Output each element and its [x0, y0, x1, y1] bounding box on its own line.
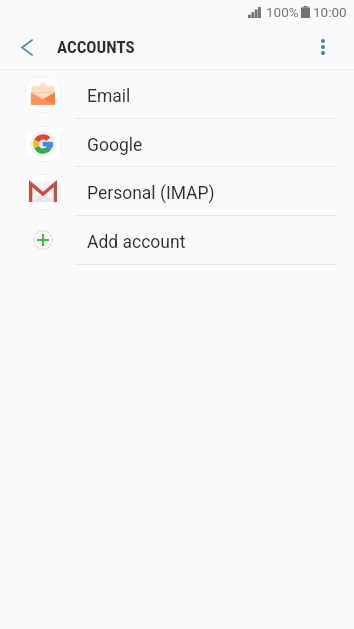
button[interactable]: More options	[300, 24, 346, 70]
button[interactable]: Personal (IMAP)	[0, 167, 354, 216]
button[interactable]: Add account	[0, 216, 354, 265]
button[interactable]: Email	[0, 70, 354, 119]
staticText: 100%	[266, 4, 299, 20]
button[interactable]: Back	[3, 24, 49, 70]
staticText: Personal (IMAP)	[87, 183, 215, 204]
staticText: Add account	[87, 232, 186, 253]
staticText: ACCOUNTS	[57, 37, 135, 57]
button[interactable]: Google	[0, 119, 354, 168]
staticText: Email	[87, 86, 131, 107]
staticText: 10:00	[313, 4, 347, 20]
staticText: Google	[87, 135, 143, 156]
